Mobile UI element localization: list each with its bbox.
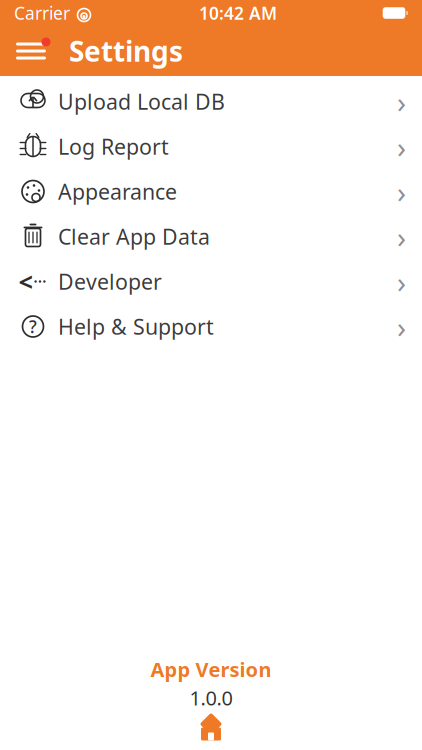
- button[interactable]: <: [0, 259, 422, 304]
- button[interactable]: ?: [0, 304, 422, 349]
- staticText: Appearance: [58, 177, 177, 206]
- staticText: ›: [397, 172, 406, 211]
- staticText: ›: [397, 262, 406, 301]
- staticText: Upload Local DB: [58, 87, 225, 116]
- staticText: App Version: [150, 656, 271, 682]
- staticText: Developer: [58, 267, 162, 296]
- button[interactable]: Appearance: [0, 169, 422, 214]
- staticText: Log Report: [58, 132, 169, 161]
- button[interactable]: Clear App Data: [0, 214, 422, 259]
- button[interactable]: Upload Local DB: [0, 79, 422, 124]
- staticText: ›: [397, 82, 406, 121]
- staticText: Clear App Data: [58, 222, 210, 251]
- staticText: ›: [397, 217, 406, 256]
- button[interactable]: Log Report: [0, 124, 422, 169]
- staticText: Settings: [69, 32, 183, 70]
- staticText: <: [18, 265, 32, 298]
- staticText: ›: [397, 307, 406, 346]
- staticText: 1.0.0: [189, 684, 232, 711]
- staticText: ?: [29, 315, 37, 338]
- staticText: Carrier: [14, 1, 70, 24]
- staticText: Help & Support: [58, 312, 214, 341]
- staticText: ›: [397, 127, 406, 166]
- staticText: 10:42 AM: [199, 1, 277, 24]
- button[interactable]: Menu: [9, 29, 53, 73]
